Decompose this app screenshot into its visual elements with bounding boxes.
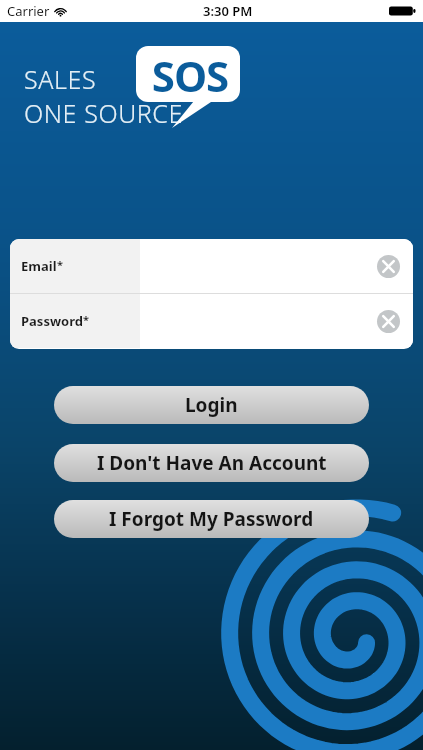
button[interactable]: Login	[54, 386, 369, 424]
staticText: *	[83, 312, 89, 327]
staticText: Carrier	[7, 2, 50, 20]
staticText: SOS	[142, 47, 238, 104]
button[interactable]: I Forgot My Password	[54, 500, 369, 538]
staticText: I Don't Have An Account	[97, 450, 327, 476]
staticText: I Forgot My Password	[109, 506, 314, 532]
staticText: Password	[21, 312, 83, 330]
staticText: 3:30 PM	[203, 2, 253, 20]
staticText: Email	[21, 257, 57, 275]
button[interactable]: Clear Email	[377, 255, 400, 278]
staticText: *	[57, 257, 63, 272]
staticText: SALES	[24, 62, 97, 96]
button[interactable]: I Don't Have An Account	[54, 444, 369, 482]
staticText: Login	[185, 392, 238, 418]
staticText: ONE SOURCE	[24, 96, 183, 130]
button[interactable]: Clear Password	[377, 310, 400, 333]
